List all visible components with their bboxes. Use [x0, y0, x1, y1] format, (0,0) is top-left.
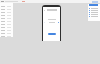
button[interactable]	[1, 35, 12, 38]
button[interactable]	[1, 26, 12, 29]
button[interactable]	[1, 14, 12, 17]
button[interactable]	[89, 15, 100, 17]
button[interactable]	[1, 20, 12, 23]
button[interactable]	[1, 29, 12, 32]
button[interactable]: Menu	[43, 9, 60, 11]
button[interactable]	[89, 7, 100, 9]
button[interactable]	[1, 8, 12, 11]
button[interactable]	[1, 11, 12, 14]
button[interactable]	[89, 13, 100, 15]
button[interactable]	[1, 5, 12, 8]
button[interactable]	[1, 17, 12, 20]
button[interactable]	[48, 33, 56, 35]
button[interactable]	[89, 9, 100, 11]
button[interactable]	[1, 32, 12, 35]
button[interactable]	[89, 11, 100, 13]
button[interactable]	[1, 23, 12, 26]
